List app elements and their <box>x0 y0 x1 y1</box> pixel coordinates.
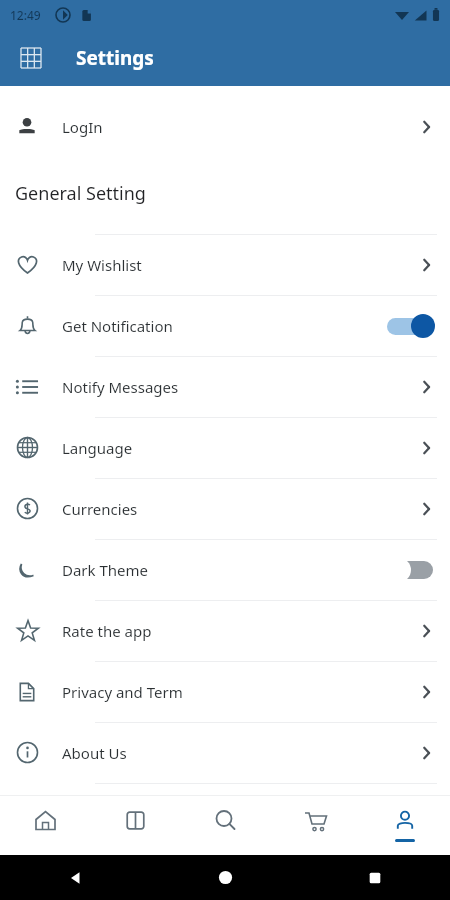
staticText: LogIn <box>62 117 415 137</box>
button[interactable]: LogIn <box>0 96 450 157</box>
staticText: Notify Messages <box>62 377 415 397</box>
staticText: General Setting <box>15 181 146 206</box>
button[interactable]: Account <box>360 795 450 855</box>
button[interactable]: Dark Theme <box>0 539 450 600</box>
button[interactable]: Menu <box>12 39 50 77</box>
button[interactable]: Currencies <box>0 478 450 539</box>
button[interactable]: Cart <box>270 795 360 855</box>
staticText: About Us <box>62 743 415 763</box>
button[interactable]: Catalog <box>90 795 180 855</box>
button[interactable]: Get Notification <box>0 295 450 356</box>
button[interactable]: Home <box>0 795 90 855</box>
button[interactable]: My Wishlist <box>0 234 450 295</box>
staticText: Privacy and Term <box>62 682 415 702</box>
staticText: Rate the app <box>62 621 415 641</box>
button[interactable]: Language <box>0 417 450 478</box>
staticText: Dark Theme <box>62 560 385 580</box>
staticText: Language <box>62 438 415 458</box>
staticText: Currencies <box>62 499 415 519</box>
staticText: Settings <box>76 45 154 71</box>
staticText: Get Notification <box>62 316 385 336</box>
button[interactable]: Search <box>180 795 270 855</box>
button[interactable]: About Us <box>0 722 450 783</box>
button[interactable]: Privacy and Term <box>0 661 450 722</box>
button[interactable]: Rate the app <box>0 600 450 661</box>
staticText: 12:49 <box>10 7 41 23</box>
staticText: My Wishlist <box>62 255 415 275</box>
button[interactable]: Notify Messages <box>0 356 450 417</box>
